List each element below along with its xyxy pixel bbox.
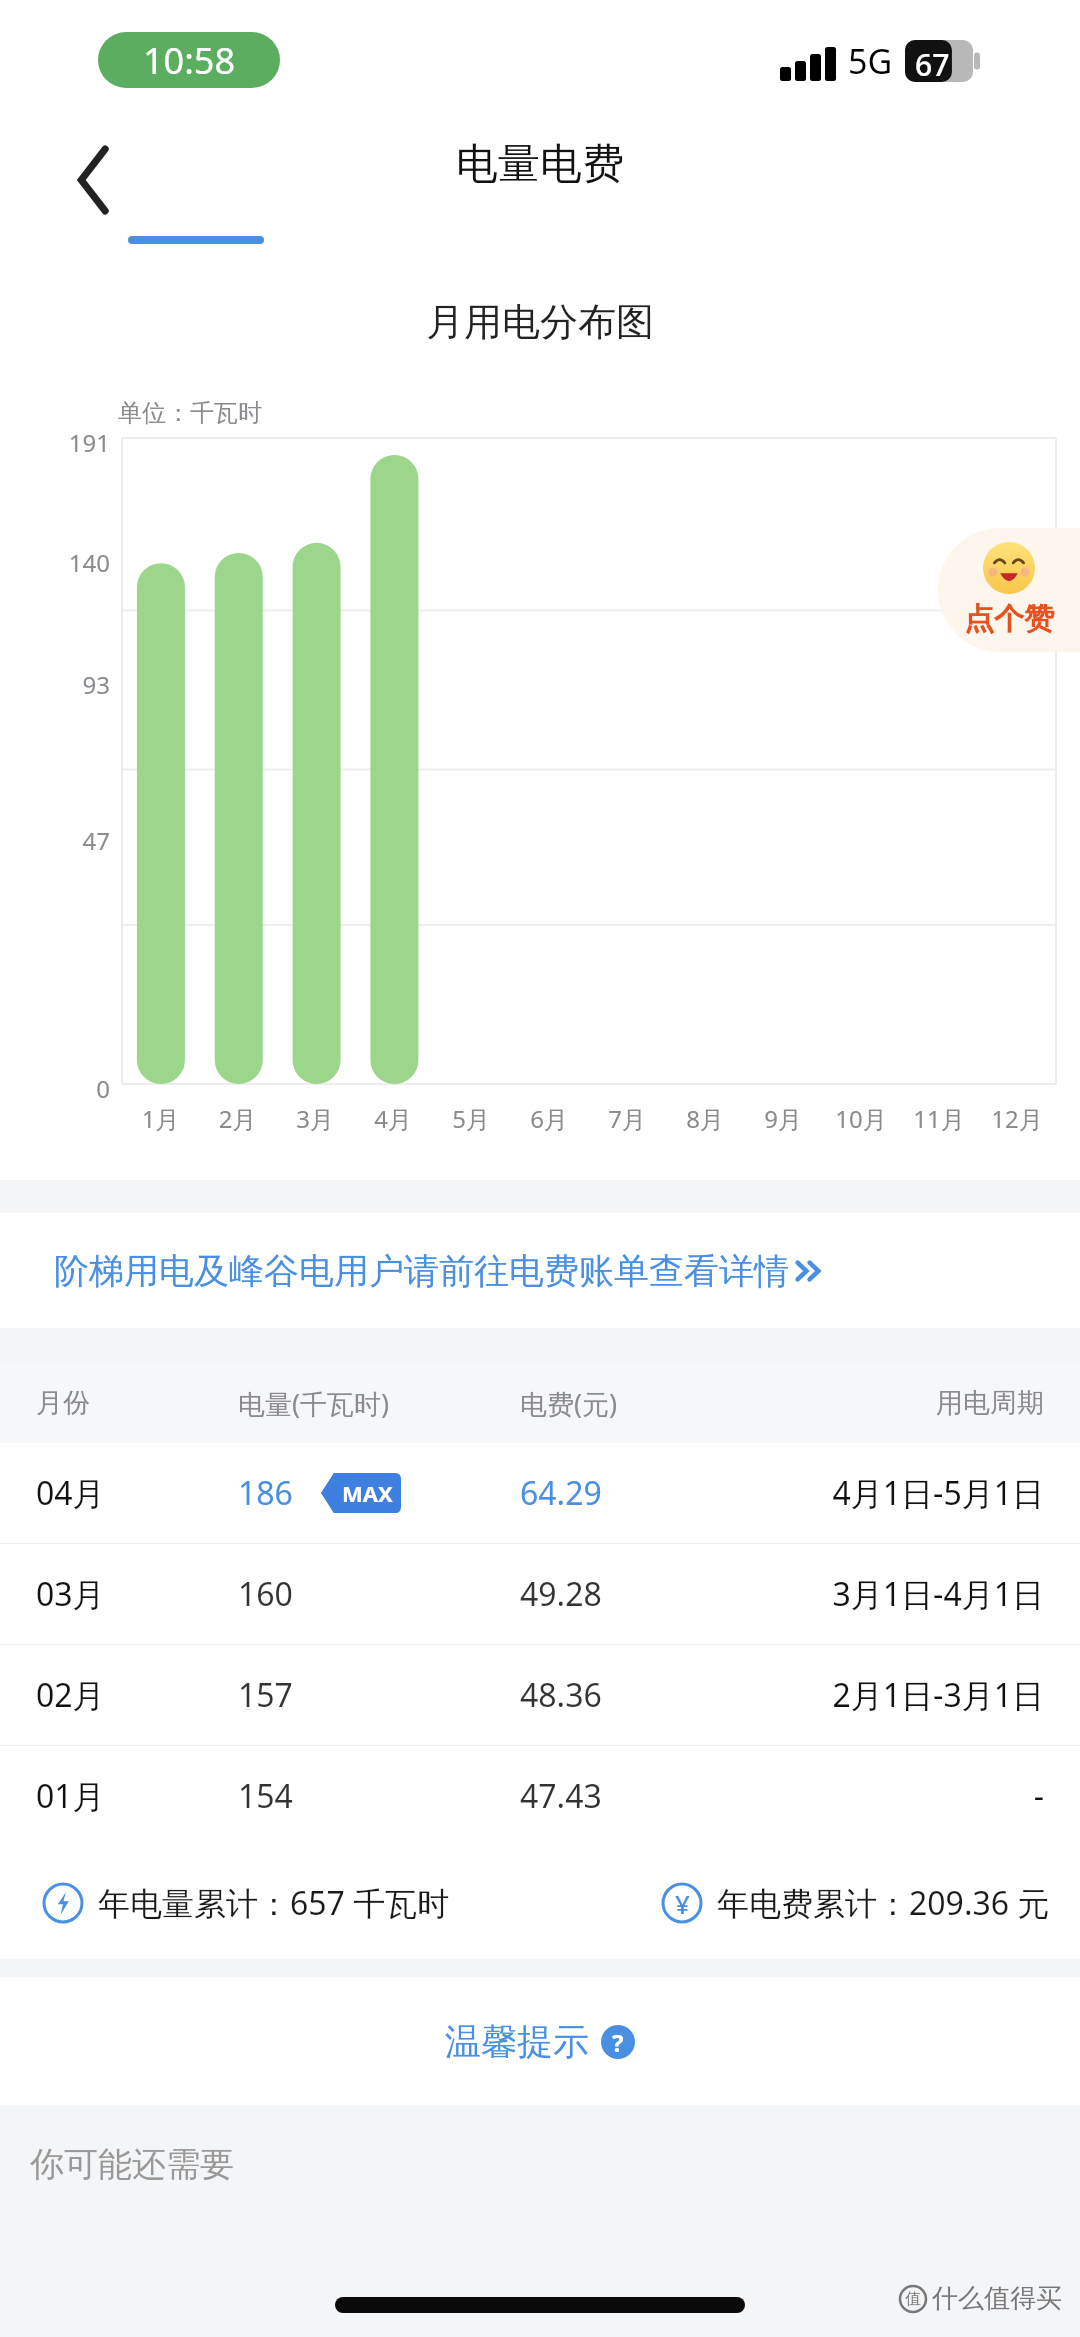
- staticText: 0: [40, 1072, 110, 1105]
- staticText: 67: [915, 44, 950, 85]
- staticText: 年电量累计：657 千瓦时: [98, 1881, 450, 1925]
- staticText: ¥: [675, 1886, 690, 1921]
- button[interactable]: 点个赞: [938, 528, 1080, 652]
- button[interactable]: 01月: [0, 1746, 1080, 1846]
- staticText: 04月: [36, 1471, 238, 1515]
- staticText: 单位：千瓦时: [118, 398, 262, 428]
- staticText: MAX: [342, 1478, 393, 1508]
- staticText: 1月: [122, 1102, 199, 1135]
- staticText: 3月: [276, 1102, 354, 1135]
- staticText: 5G: [848, 38, 893, 84]
- staticText: 47.43: [520, 1774, 742, 1818]
- staticText: 140: [40, 546, 110, 579]
- staticText: 3月1日-4月1日: [742, 1572, 1044, 1616]
- staticText: 值: [905, 2289, 921, 2309]
- staticText: 月份: [36, 1386, 238, 1420]
- staticText: 8月: [666, 1102, 744, 1135]
- staticText: 4月: [354, 1102, 432, 1135]
- staticText: 年电费累计：209.36 元: [717, 1881, 1050, 1925]
- button[interactable]: 温馨提示: [445, 2019, 635, 2064]
- button[interactable]: 04月: [0, 1443, 1080, 1543]
- staticText: 10:58: [143, 36, 236, 85]
- staticText: 电量电费: [0, 138, 1080, 191]
- staticText: 191: [40, 426, 110, 459]
- staticText: 47: [40, 824, 110, 857]
- staticText: 用电周期: [742, 1386, 1044, 1420]
- staticText: 157: [238, 1673, 293, 1717]
- staticText: 11月: [900, 1102, 978, 1135]
- staticText: 9月: [744, 1102, 822, 1135]
- staticText: ?: [612, 2026, 624, 2059]
- staticText: 什么值得买: [932, 2282, 1062, 2315]
- staticText: 160: [238, 1572, 293, 1616]
- staticText: 7月: [588, 1102, 666, 1135]
- button[interactable]: Back: [46, 132, 142, 228]
- staticText: 02月: [36, 1673, 238, 1717]
- staticText: -: [742, 1774, 1044, 1818]
- button[interactable]: 03月: [0, 1544, 1080, 1644]
- staticText: 点个赞: [964, 600, 1054, 638]
- staticText: 6月: [510, 1102, 588, 1135]
- staticText: 温馨提示: [445, 2019, 589, 2064]
- staticText: 阶梯用电及峰谷电用户请前往电费账单查看详情: [54, 1249, 789, 1293]
- staticText: 5月: [432, 1102, 510, 1135]
- staticText: 01月: [36, 1774, 238, 1818]
- button[interactable]: 02月: [0, 1645, 1080, 1745]
- staticText: 12月: [978, 1102, 1056, 1135]
- staticText: 48.36: [520, 1673, 742, 1717]
- staticText: 186: [238, 1471, 293, 1515]
- button[interactable]: 阶梯用电及峰谷电用户请前往电费账单查看详情: [0, 1213, 1080, 1328]
- staticText: 154: [238, 1774, 293, 1818]
- staticText: 2月1日-3月1日: [742, 1673, 1044, 1717]
- staticText: 64.29: [520, 1471, 742, 1515]
- staticText: 你可能还需要: [30, 2143, 234, 2186]
- staticText: 93: [40, 668, 110, 701]
- staticText: 10月: [822, 1102, 900, 1135]
- staticText: 03月: [36, 1572, 238, 1616]
- staticText: 49.28: [520, 1572, 742, 1616]
- staticText: 4月1日-5月1日: [742, 1471, 1044, 1515]
- staticText: 月用电分布图: [0, 298, 1080, 346]
- staticText: 电量(千瓦时): [238, 1385, 520, 1422]
- staticText: 2月: [199, 1102, 276, 1135]
- staticText: 电费(元): [520, 1385, 742, 1422]
